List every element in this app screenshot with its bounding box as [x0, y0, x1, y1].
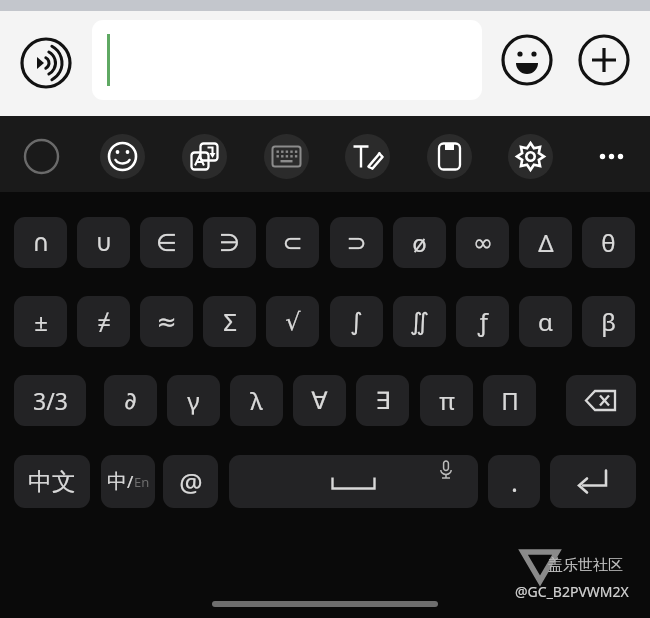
staticText: √ [285, 308, 301, 336]
button[interactable]: . [488, 455, 540, 508]
button[interactable]: ∪ [77, 217, 130, 268]
button[interactable]: Backspace [566, 375, 636, 426]
staticText: α [538, 305, 553, 338]
button[interactable]: ø [393, 217, 446, 268]
button[interactable]: β [582, 296, 635, 347]
button[interactable]: Π [483, 375, 536, 426]
button[interactable]: Δ [519, 217, 572, 268]
staticText: λ [250, 384, 263, 417]
button[interactable]: ≠ [77, 296, 130, 347]
staticText: ⊂ [282, 229, 303, 257]
staticText: 中 [107, 469, 127, 494]
button[interactable]: Add [577, 33, 631, 87]
staticText: 3/3 [33, 385, 68, 416]
button[interactable]: Settings [508, 134, 553, 179]
button[interactable]: More options [589, 134, 634, 179]
button[interactable]: Recording [19, 134, 64, 179]
staticText: β [601, 305, 616, 338]
staticText: En [134, 473, 150, 491]
staticText: ∋ [219, 229, 240, 257]
button[interactable]: Stickers [100, 134, 145, 179]
button[interactable]: θ [582, 217, 635, 268]
button[interactable]: Enter [550, 455, 636, 508]
button[interactable]: ⊂ [266, 217, 319, 268]
staticText: ∈ [156, 229, 177, 257]
button[interactable]: ∃ [356, 375, 409, 426]
button[interactable]: Keyboard layout [264, 134, 309, 179]
button[interactable]: ∂ [104, 375, 157, 426]
button[interactable]: ∫ [330, 296, 383, 347]
button[interactable]: Translate [182, 134, 227, 179]
staticText: π [439, 384, 455, 417]
staticText: ∞ [473, 229, 493, 257]
staticText: ≈ [156, 308, 177, 336]
button[interactable]: Emoji [500, 33, 554, 87]
button[interactable]: γ [167, 375, 220, 426]
button[interactable] [92, 20, 482, 100]
staticText: ⊃ [346, 229, 367, 257]
staticText: ø [412, 226, 427, 259]
staticText: ∬ [410, 308, 429, 336]
staticText: 盖乐世社区 [548, 556, 623, 575]
button[interactable]: 中文 [14, 455, 90, 508]
staticText: ∀ [311, 387, 328, 415]
staticText: / [127, 470, 134, 493]
staticText: 中文 [28, 467, 76, 497]
button[interactable]: 3/3 [14, 375, 86, 426]
button[interactable]: 中 [101, 455, 155, 508]
staticText: ∃ [375, 387, 391, 415]
button[interactable]: @ [163, 455, 218, 508]
button[interactable]: λ [230, 375, 283, 426]
button[interactable]: ∀ [293, 375, 346, 426]
staticText: ± [34, 305, 48, 338]
button[interactable]: √ [266, 296, 319, 347]
button[interactable]: ∋ [203, 217, 256, 268]
staticText: ƒ [478, 305, 488, 338]
staticText: ∂ [124, 387, 137, 415]
button[interactable]: π [420, 375, 473, 426]
button[interactable]: Space [229, 455, 478, 508]
button[interactable]: α [519, 296, 572, 347]
button[interactable]: ∈ [140, 217, 193, 268]
button[interactable]: ≈ [140, 296, 193, 347]
staticText: γ [187, 384, 200, 417]
button[interactable]: ± [14, 296, 67, 347]
button[interactable]: ⊃ [330, 217, 383, 268]
staticText: ∩ [32, 229, 50, 257]
staticText: Σ [223, 305, 237, 338]
staticText: ≠ [97, 305, 111, 338]
button[interactable]: ∬ [393, 296, 446, 347]
button[interactable]: Σ [203, 296, 256, 347]
button[interactable]: ƒ [456, 296, 509, 347]
staticText: ∪ [95, 229, 113, 257]
staticText: @ [179, 464, 203, 499]
staticText: . [511, 464, 518, 499]
staticText: ∫ [350, 308, 363, 336]
button[interactable]: Voice input [19, 36, 73, 90]
button[interactable]: Clipboard [427, 134, 472, 179]
button[interactable]: Handwriting [345, 134, 390, 179]
staticText: @GC_B2PVWM2X [515, 582, 629, 601]
staticText: θ [601, 226, 616, 259]
button[interactable]: ∞ [456, 217, 509, 268]
staticText: Δ [538, 226, 554, 259]
staticText: Π [501, 384, 519, 417]
button[interactable]: ∩ [14, 217, 67, 268]
